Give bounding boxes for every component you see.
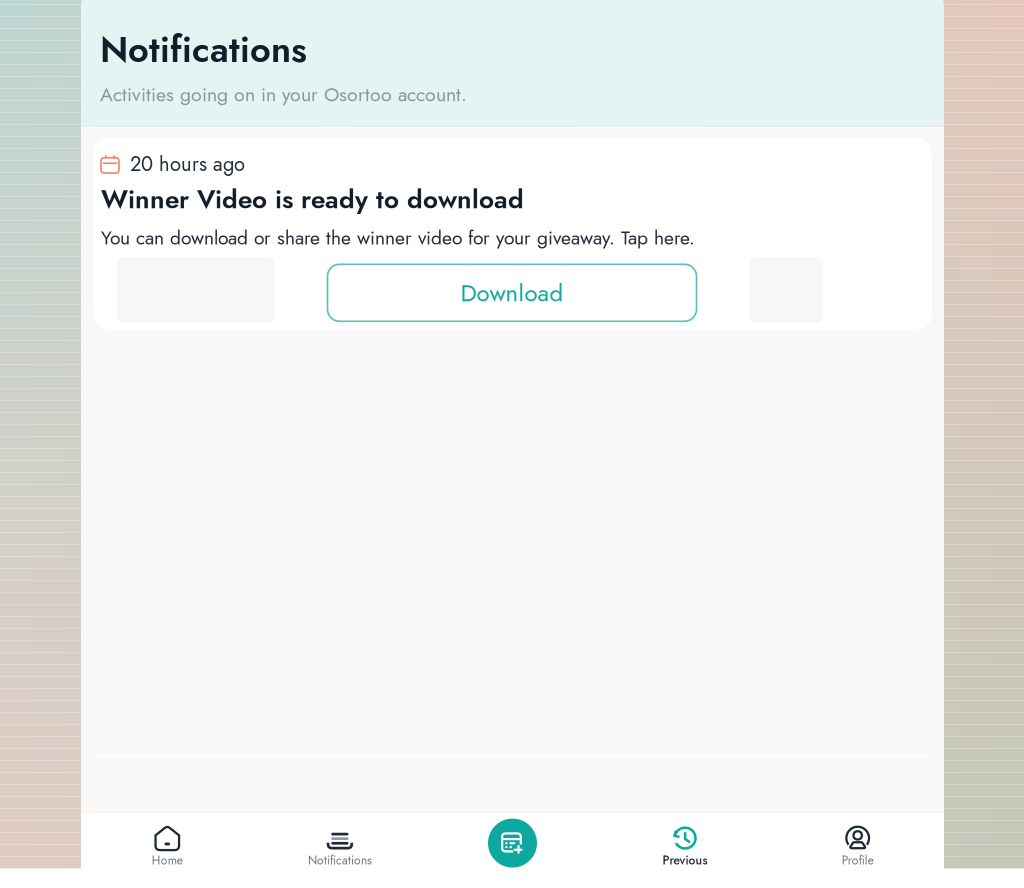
staticText: Previous <box>663 852 708 869</box>
staticText: Winner Video is ready to download <box>101 180 524 218</box>
button[interactable]: Previous <box>599 819 771 875</box>
staticText: You can download or share the winner vid… <box>101 224 695 252</box>
staticText: Notifications <box>308 852 372 869</box>
staticText: Download <box>460 275 563 310</box>
staticText: Home <box>152 852 183 869</box>
button[interactable]: Profile <box>771 819 944 875</box>
staticText: 20 hours ago <box>130 150 245 178</box>
button[interactable]: Home <box>81 819 254 875</box>
staticText: Activities going on in your Osortoo acco… <box>100 80 467 108</box>
staticText: Notifications <box>100 23 307 75</box>
button[interactable]: Download <box>327 264 696 321</box>
button[interactable]: Notifications <box>254 819 426 875</box>
staticText: Profile <box>842 852 874 869</box>
button[interactable]: Create new giveaway <box>426 819 599 888</box>
